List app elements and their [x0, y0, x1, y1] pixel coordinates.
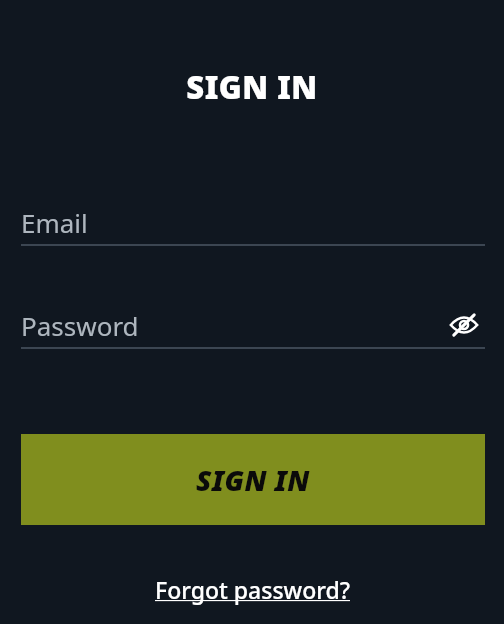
button[interactable]: Show password: [442, 303, 486, 347]
staticText: Email: [21, 205, 88, 240]
button[interactable]: Forgot password?: [155, 574, 350, 605]
button[interactable]: Email: [21, 200, 485, 248]
button[interactable]: Password: [21, 303, 485, 351]
staticText: SIGN IN: [186, 66, 318, 108]
staticText: Password: [21, 308, 139, 343]
button[interactable]: SIGN IN: [21, 434, 485, 525]
staticText: SIGN IN: [196, 461, 310, 499]
staticText: Forgot password?: [155, 574, 350, 605]
